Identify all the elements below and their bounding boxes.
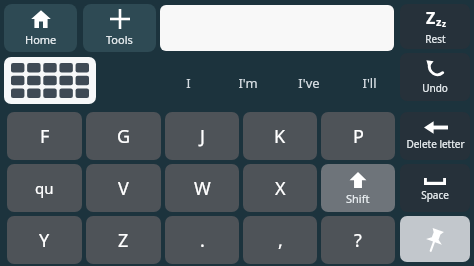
staticText: Shift <box>346 191 370 206</box>
button[interactable]: X <box>243 164 317 212</box>
button[interactable]: Tools <box>83 4 156 52</box>
button[interactable]: I'll <box>339 55 400 110</box>
staticText: I've <box>298 74 320 92</box>
staticText: J <box>200 124 205 149</box>
staticText: Delete letter <box>406 137 465 151</box>
button[interactable]: P <box>321 112 395 160</box>
staticText: Tools <box>106 32 133 47</box>
button[interactable]: Delete letter <box>400 112 470 160</box>
button[interactable]: Home <box>4 4 77 52</box>
button[interactable]: J <box>165 112 239 160</box>
button[interactable]: Undo <box>400 53 470 101</box>
button[interactable]: ? <box>321 216 395 264</box>
staticText: W <box>194 176 211 201</box>
staticText: Rest <box>425 32 446 46</box>
staticText: Undo <box>422 81 448 95</box>
button[interactable]: Keyboard <box>4 57 96 104</box>
staticText: z <box>436 14 442 29</box>
staticText: ? <box>354 228 362 253</box>
staticText: F <box>40 124 50 149</box>
staticText: K <box>274 124 286 149</box>
button[interactable]: Z <box>400 4 470 49</box>
staticText: I <box>186 74 191 92</box>
staticText: I'm <box>238 74 258 92</box>
button[interactable]: Z <box>86 216 161 264</box>
button[interactable]: . <box>165 216 239 264</box>
button[interactable]: V <box>86 164 161 212</box>
button[interactable]: G <box>86 112 161 160</box>
button[interactable]: Space <box>400 164 470 212</box>
button[interactable]: qu <box>7 164 82 212</box>
button[interactable]: Text field <box>160 5 394 51</box>
staticText: P <box>353 124 364 149</box>
button[interactable]: I <box>158 55 218 110</box>
button[interactable]: Pin <box>400 216 470 262</box>
button[interactable]: Shift <box>321 164 395 212</box>
staticText: V <box>118 176 129 201</box>
button[interactable]: K <box>243 112 317 160</box>
staticText: G <box>117 124 131 149</box>
staticText: . <box>200 228 205 253</box>
staticText: X <box>275 176 286 201</box>
staticText: Home <box>25 32 57 47</box>
staticText: Space <box>421 188 449 202</box>
staticText: Z <box>118 228 129 253</box>
staticText: I'll <box>362 74 377 92</box>
button[interactable]: W <box>165 164 239 212</box>
staticText: Y <box>39 228 50 253</box>
button[interactable]: , <box>243 216 317 264</box>
staticText: z <box>442 18 446 29</box>
button[interactable]: I've <box>278 55 339 110</box>
staticText: Z <box>426 7 436 29</box>
staticText: qu <box>35 178 54 198</box>
button[interactable]: I'm <box>218 55 278 110</box>
staticText: , <box>278 228 283 253</box>
button[interactable]: Y <box>7 216 82 264</box>
button[interactable]: F <box>7 112 82 160</box>
